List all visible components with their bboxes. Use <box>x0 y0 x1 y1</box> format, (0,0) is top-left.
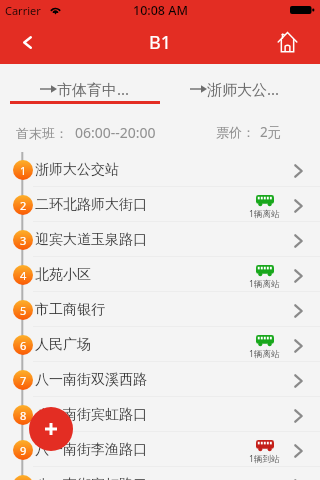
staticText: 浙师大公交站 <box>35 161 119 179</box>
staticText: 市工商银行 <box>35 301 105 319</box>
staticText: 1辆离站 <box>249 348 280 360</box>
staticText: 1辆离站 <box>249 208 280 220</box>
staticText: Carrier <box>5 3 41 18</box>
button[interactable]: Back <box>0 20 55 64</box>
staticText: 3 <box>20 233 27 248</box>
staticText: 7 <box>20 373 27 388</box>
button[interactable]: 9 <box>0 432 320 467</box>
staticText: 2元 <box>260 123 282 141</box>
staticText: 北苑小区 <box>35 266 91 284</box>
button[interactable]: 5 <box>0 292 320 327</box>
staticText: B1 <box>149 30 171 55</box>
staticText: 八一南街宾虹路口 <box>35 406 147 424</box>
button[interactable]: Home <box>265 20 320 64</box>
staticText: 二环北路师大街口 <box>35 196 147 214</box>
button[interactable]: Add favourite <box>29 407 73 451</box>
button[interactable]: 1 <box>0 152 320 187</box>
button[interactable]: 4 <box>0 257 320 292</box>
staticText: 8 <box>20 408 27 423</box>
button[interactable]: 10 <box>0 467 320 480</box>
staticText: 1 <box>20 163 27 178</box>
staticText: 5 <box>20 303 27 318</box>
staticText: 八一南街李渔路口 <box>35 441 147 459</box>
button[interactable]: 市体育中... <box>10 64 160 112</box>
button[interactable]: 7 <box>0 362 320 397</box>
staticText: 06:00--20:00 <box>75 123 156 142</box>
staticText: 1辆离站 <box>249 278 280 290</box>
staticText: 2 <box>20 198 27 213</box>
staticText: 6 <box>20 338 27 353</box>
staticText: 市体育中... <box>57 79 130 99</box>
button[interactable]: 3 <box>0 222 320 257</box>
staticText: 八一南街宾虹路口 <box>35 476 147 480</box>
staticText: 迎宾大道玉泉路口 <box>35 231 147 249</box>
button[interactable]: 6 <box>0 327 320 362</box>
staticText: 浙师大公... <box>207 79 280 99</box>
staticText: 首末班： <box>16 125 68 141</box>
staticText: 1辆到站 <box>249 453 280 465</box>
staticText: 人民广场 <box>35 336 91 354</box>
staticText: 票价： <box>216 124 255 140</box>
button[interactable]: 2 <box>0 187 320 222</box>
staticText: 八一南街双溪西路 <box>35 371 147 389</box>
button[interactable]: 浙师大公... <box>160 64 310 112</box>
staticText: 10:08 AM <box>133 2 188 19</box>
staticText: 4 <box>20 268 27 283</box>
staticText: 9 <box>20 443 27 458</box>
button[interactable]: 8 <box>0 397 320 432</box>
